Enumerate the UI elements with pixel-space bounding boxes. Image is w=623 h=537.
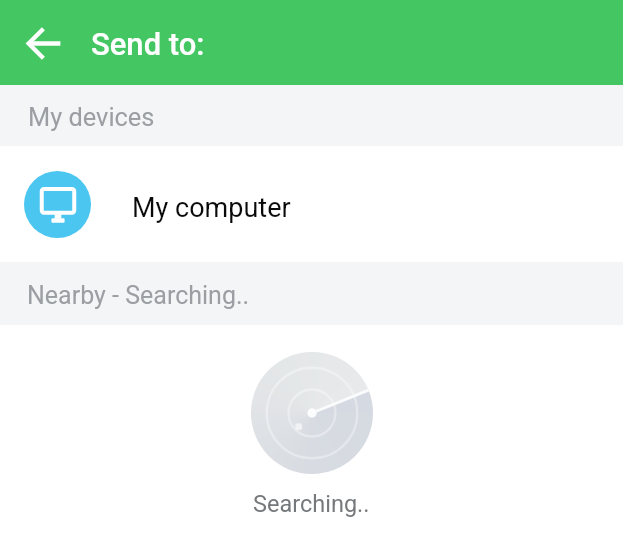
staticText: Nearby - Searching.. [27, 281, 250, 310]
staticText: My computer [132, 192, 291, 224]
staticText: Send to: [91, 26, 205, 62]
button[interactable]: Back [12, 11, 76, 75]
staticText: My devices [28, 102, 155, 132]
button[interactable]: My computer [0, 146, 623, 262]
staticText: Searching.. [253, 490, 370, 518]
